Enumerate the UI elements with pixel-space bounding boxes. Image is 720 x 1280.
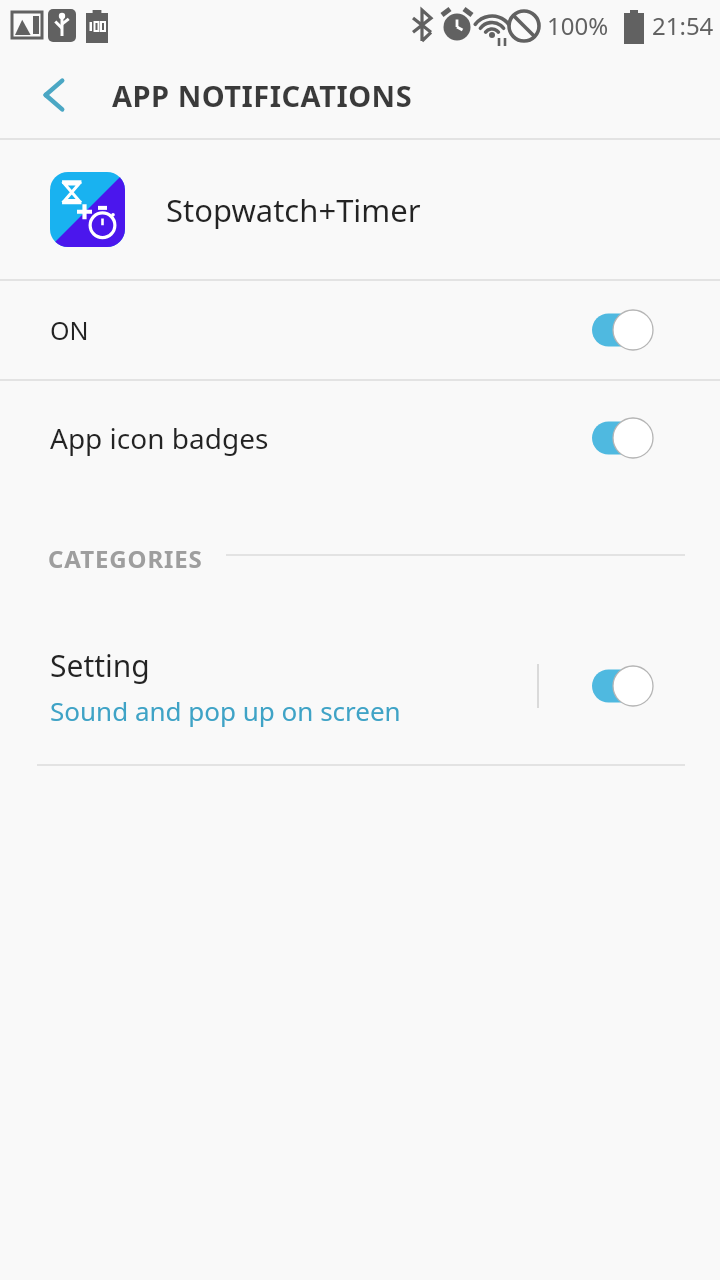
button[interactable]: Back [24, 64, 86, 126]
staticText: Sound and pop up on screen [50, 693, 401, 728]
button[interactable]: Toggle [592, 415, 670, 461]
staticText: 100% [547, 9, 609, 42]
staticText: Setting [50, 645, 150, 686]
staticText: CATEGORIES [48, 542, 203, 575]
staticText: App icon badges [50, 419, 269, 457]
button[interactable]: ON [0, 281, 720, 379]
staticText: ON [50, 313, 89, 347]
staticText: 21:54 [652, 9, 714, 42]
staticText: Stopwatch+Timer [166, 189, 421, 231]
button[interactable]: Stopwatch+Timer [0, 140, 720, 279]
staticText: APP NOTIFICATIONS [112, 76, 413, 115]
button[interactable]: Setting [0, 622, 720, 750]
button[interactable]: App icon badges [0, 381, 720, 494]
button[interactable]: Toggle [592, 307, 670, 353]
button[interactable]: Toggle [592, 663, 670, 709]
